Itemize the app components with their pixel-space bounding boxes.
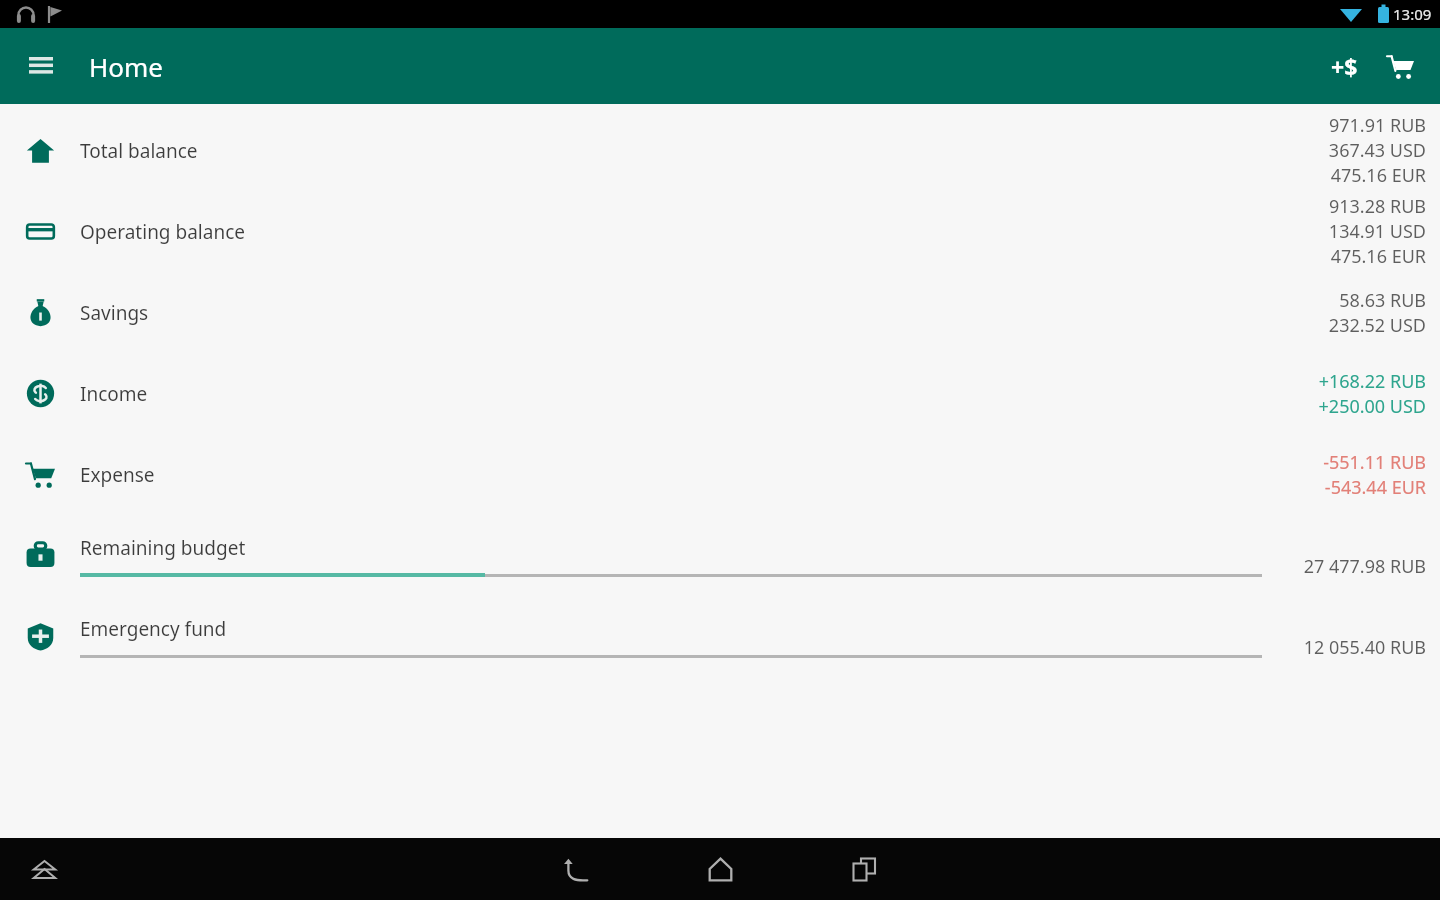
- staticText: Total balance: [80, 138, 198, 164]
- button[interactable]: Recent apps: [838, 843, 890, 895]
- staticText: 134.91 USD: [1328, 219, 1426, 244]
- staticText: Home: [89, 49, 163, 84]
- staticText: 971.91 RUB: [1328, 113, 1426, 138]
- staticText: 58.63 RUB: [1339, 288, 1426, 313]
- staticText: Emergency fund: [80, 616, 227, 642]
- button[interactable]: Income: [0, 353, 1440, 434]
- staticText: -551.11 RUB: [1323, 450, 1426, 475]
- staticText: Expense: [80, 462, 155, 488]
- button[interactable]: Total balance: [0, 110, 1440, 191]
- staticText: +250.00 USD: [1318, 394, 1426, 419]
- button[interactable]: Expense: [0, 434, 1440, 515]
- staticText: Remaining budget: [80, 535, 246, 561]
- staticText: 13:09: [1393, 4, 1432, 24]
- button[interactable]: Savings: [0, 272, 1440, 353]
- staticText: Operating balance: [80, 219, 245, 245]
- button[interactable]: Remaining budget: [0, 515, 1440, 596]
- staticText: 367.43 USD: [1328, 138, 1426, 163]
- staticText: +$: [1331, 51, 1358, 82]
- staticText: 12 055.40 RUB: [1303, 635, 1426, 660]
- staticText: 475.16 EUR: [1330, 244, 1426, 269]
- staticText: Savings: [80, 300, 149, 326]
- staticText: Income: [80, 381, 148, 407]
- button[interactable]: Emergency fund: [0, 596, 1440, 677]
- button[interactable]: Add transaction: [1316, 38, 1372, 94]
- button[interactable]: Shopping cart: [1372, 38, 1428, 94]
- staticText: 232.52 USD: [1328, 313, 1426, 338]
- staticText: 27 477.98 RUB: [1303, 554, 1426, 579]
- staticText: +168.22 RUB: [1318, 369, 1426, 394]
- staticText: 475.16 EUR: [1330, 163, 1426, 188]
- button[interactable]: Operating balance: [0, 191, 1440, 272]
- button[interactable]: Back: [550, 843, 602, 895]
- staticText: -543.44 EUR: [1324, 475, 1426, 500]
- button[interactable]: Expand status bar: [20, 845, 68, 893]
- button[interactable]: Home: [694, 843, 746, 895]
- staticText: 913.28 RUB: [1328, 194, 1426, 219]
- button[interactable]: Open navigation drawer: [15, 40, 67, 92]
